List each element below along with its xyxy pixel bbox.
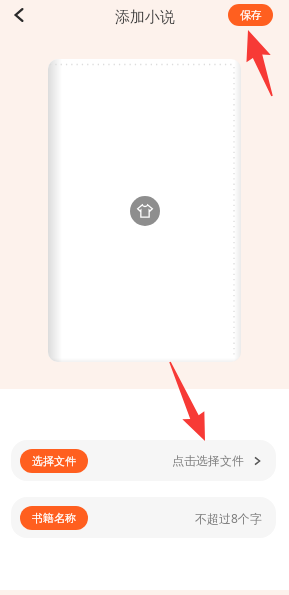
staticText: 点击选择文件 bbox=[172, 453, 244, 468]
staticText: 书籍名称 bbox=[32, 511, 76, 525]
staticText: 选择文件 bbox=[32, 454, 76, 468]
button[interactable]: 书籍名称 bbox=[11, 497, 276, 538]
button[interactable]: 保存 bbox=[228, 4, 273, 26]
staticText: 不超过8个字 bbox=[195, 510, 262, 526]
button[interactable]: 选择文件 bbox=[11, 440, 276, 481]
button[interactable]: Back bbox=[4, 0, 34, 30]
staticText: 保存 bbox=[240, 8, 262, 22]
staticText: 添加小说 bbox=[115, 8, 175, 27]
